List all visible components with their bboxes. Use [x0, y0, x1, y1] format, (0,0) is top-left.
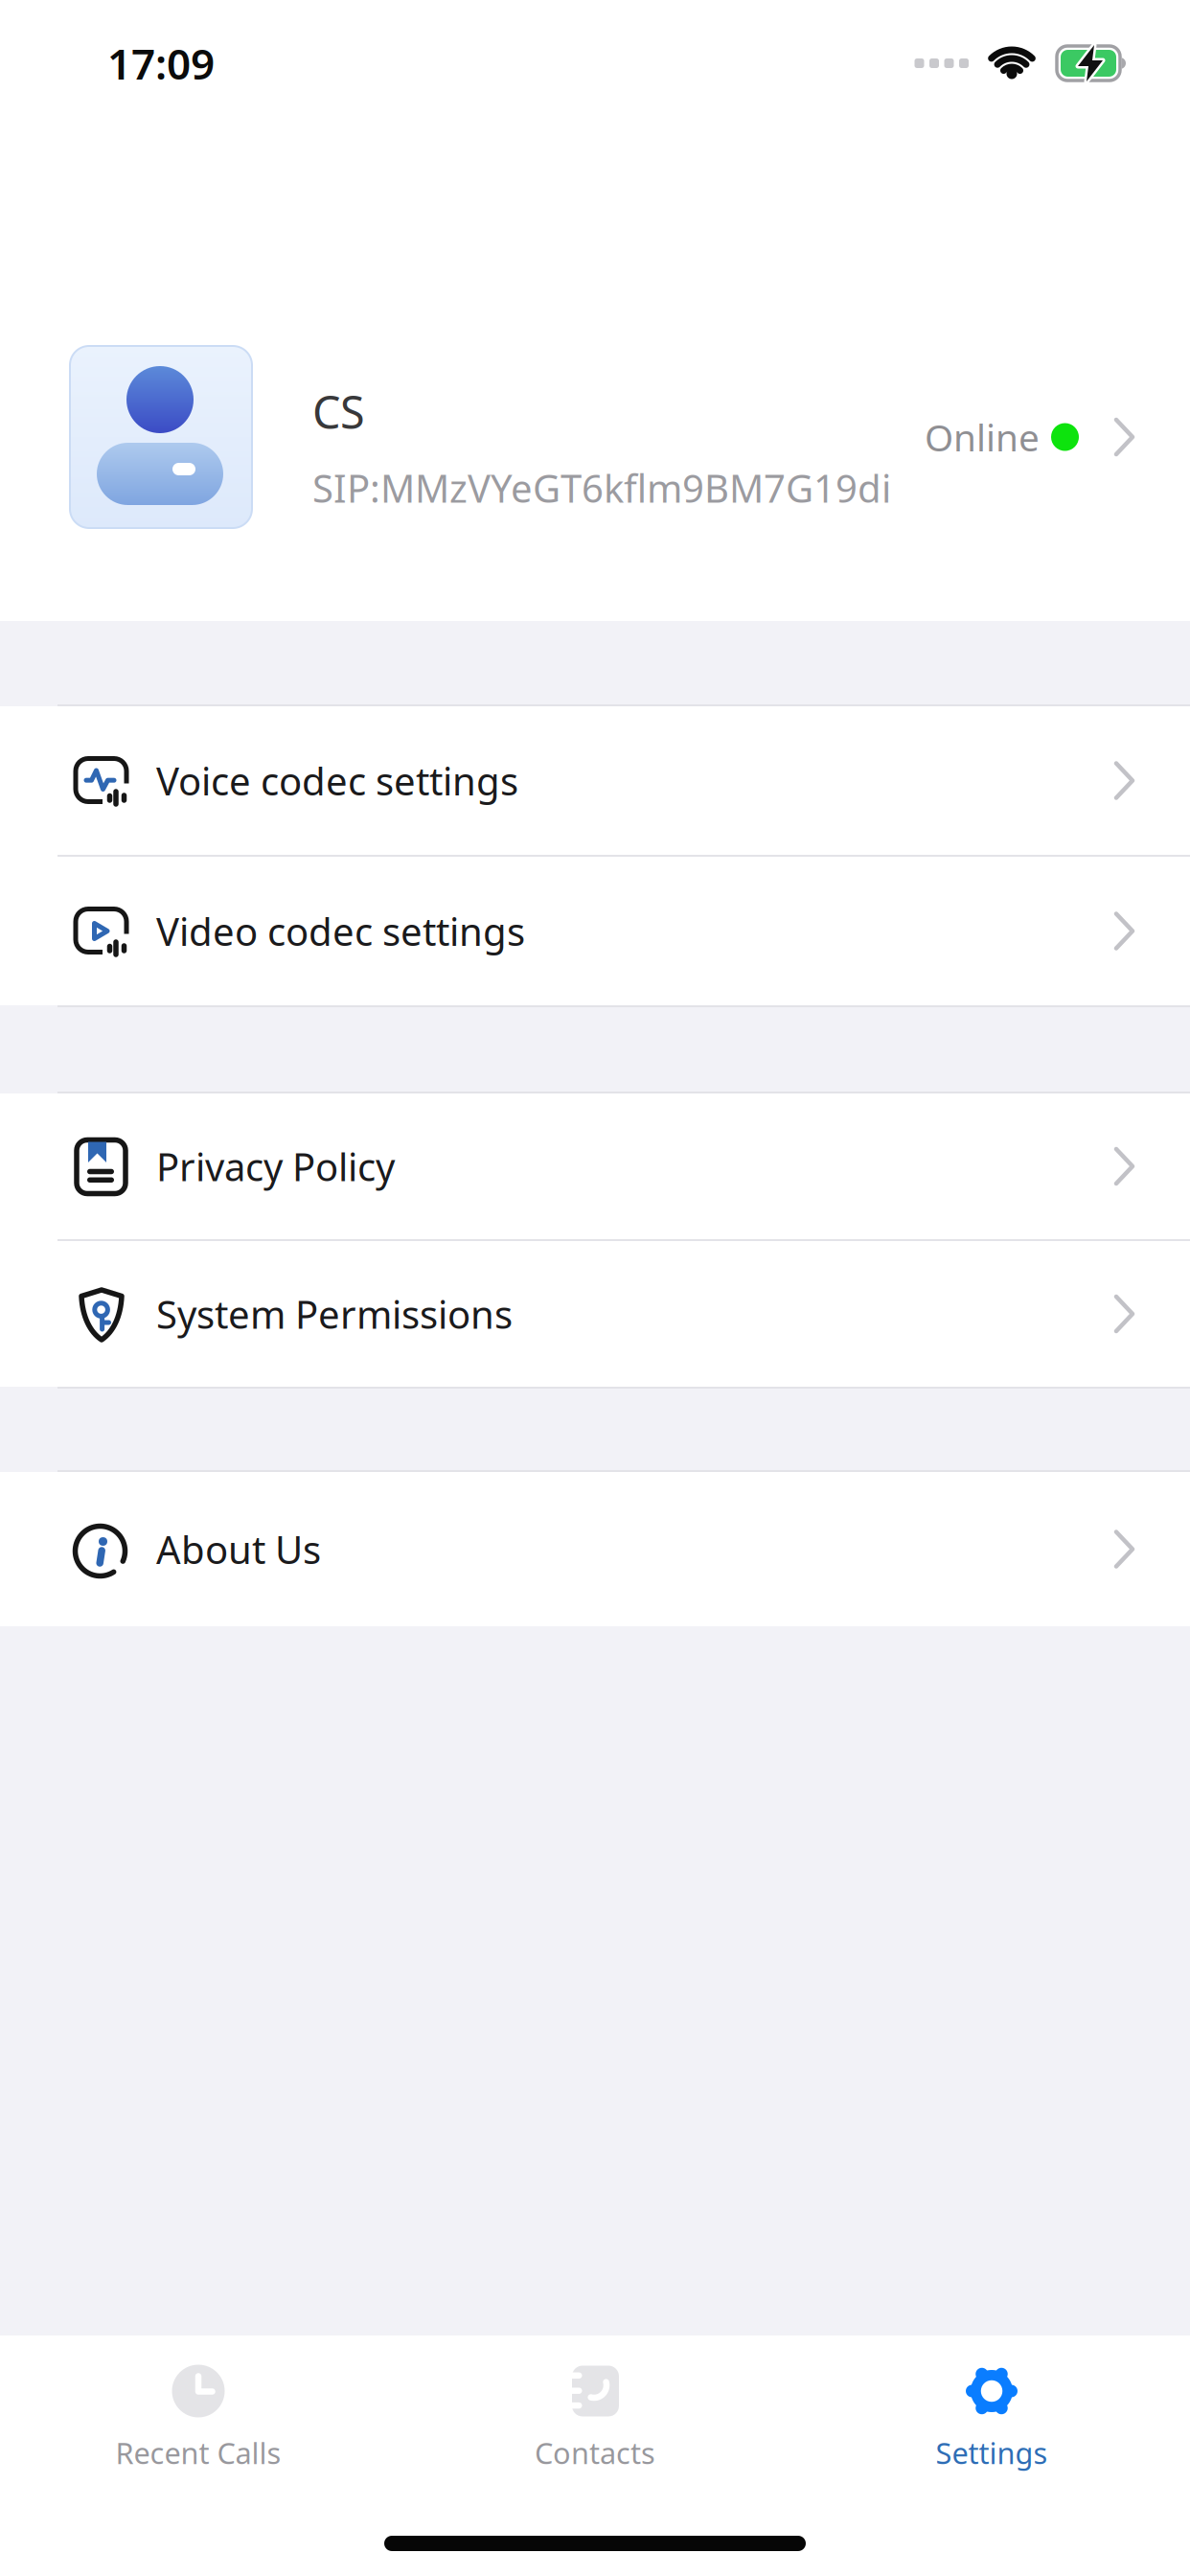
button[interactable]: Settings: [793, 2362, 1190, 2472]
staticText: Contacts: [535, 2433, 655, 2472]
staticText: Recent Calls: [115, 2433, 281, 2472]
staticText: SIP:MMzVYeGT6kflm9BM7G19di: [312, 462, 891, 513]
button[interactable]: Voice codec settings: [0, 706, 1190, 855]
staticText: Online: [925, 412, 1040, 462]
button[interactable]: Video codec settings: [0, 857, 1190, 1005]
staticText: 17:09: [107, 35, 215, 91]
staticText: System Permissions: [156, 1288, 513, 1339]
button[interactable]: System Permissions: [0, 1241, 1190, 1387]
staticText: Voice codec settings: [156, 755, 518, 806]
staticText: About Us: [156, 1524, 321, 1575]
button[interactable]: CS: [0, 346, 1190, 528]
staticText: CS: [312, 382, 365, 441]
staticText: Privacy Policy: [156, 1141, 395, 1192]
button[interactable]: About Us: [0, 1472, 1190, 1626]
staticText: Video codec settings: [156, 906, 525, 956]
button[interactable]: Privacy Policy: [0, 1093, 1190, 1239]
button[interactable]: Recent Calls: [0, 2362, 397, 2472]
staticText: Settings: [936, 2433, 1048, 2472]
button[interactable]: Contacts: [397, 2362, 793, 2472]
